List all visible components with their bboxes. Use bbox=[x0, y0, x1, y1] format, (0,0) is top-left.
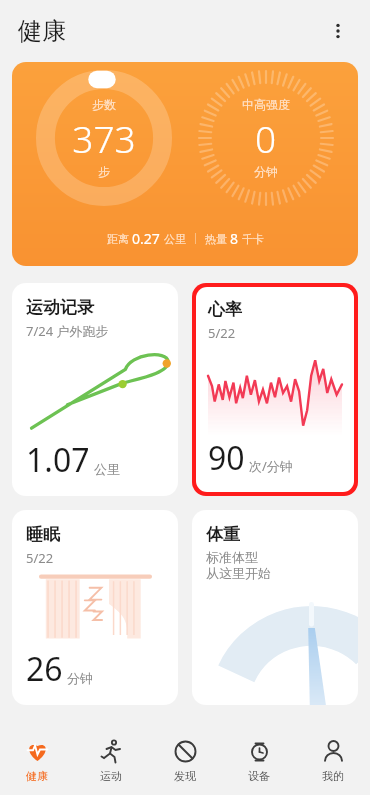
staticText: 8 bbox=[230, 229, 242, 248]
staticText: 0 bbox=[255, 113, 277, 163]
button[interactable]: 我的 bbox=[296, 727, 370, 795]
staticText: 健康 bbox=[26, 769, 48, 783]
staticText: 分钟 bbox=[67, 670, 93, 686]
staticText: 5/22 bbox=[208, 324, 236, 342]
staticText: 从这里开始 bbox=[206, 565, 271, 581]
staticText: 1.07 bbox=[26, 438, 90, 482]
button[interactable]: 体重 bbox=[192, 510, 358, 705]
staticText: 步 bbox=[98, 164, 110, 179]
staticText: 中高强度 bbox=[242, 97, 290, 112]
button[interactable]: 发现 bbox=[148, 727, 222, 795]
staticText: 373 bbox=[72, 113, 136, 163]
staticText: 热量 bbox=[205, 231, 230, 246]
button[interactable]: More options bbox=[316, 9, 360, 53]
staticText: 标准体型 bbox=[206, 549, 258, 565]
staticText: 26 bbox=[26, 647, 63, 691]
staticText: 设备 bbox=[248, 769, 270, 783]
staticText: 分钟 bbox=[254, 164, 278, 179]
staticText: 体重 bbox=[206, 524, 240, 545]
staticText: 公里 bbox=[94, 461, 120, 477]
button[interactable]: 步数 bbox=[12, 62, 358, 266]
staticText: 距离 bbox=[107, 231, 132, 246]
staticText: 步数 bbox=[92, 97, 116, 112]
staticText: 千卡 bbox=[242, 232, 264, 246]
button[interactable]: 运动 bbox=[74, 727, 148, 795]
staticText: 公里 bbox=[164, 232, 186, 246]
staticText: 运动记录 bbox=[26, 297, 94, 318]
staticText: 运动 bbox=[100, 769, 122, 783]
button[interactable]: 睡眠 bbox=[12, 510, 178, 705]
button[interactable]: 心率 bbox=[196, 287, 354, 492]
button[interactable]: 健康 bbox=[0, 727, 74, 795]
staticText: 90 bbox=[208, 436, 245, 480]
staticText: 7/24 户外跑步 bbox=[26, 322, 109, 340]
staticText: 睡眠 bbox=[26, 524, 60, 545]
staticText: 健康 bbox=[18, 16, 66, 46]
button[interactable]: 设备 bbox=[222, 727, 296, 795]
staticText: 5/22 bbox=[26, 549, 54, 567]
button[interactable]: 运动记录 bbox=[12, 283, 178, 496]
staticText: 0.27 bbox=[132, 229, 164, 248]
staticText: 次/分钟 bbox=[249, 457, 293, 475]
staticText: 发现 bbox=[174, 769, 196, 783]
staticText: 我的 bbox=[322, 769, 344, 783]
staticText: 心率 bbox=[208, 299, 242, 320]
